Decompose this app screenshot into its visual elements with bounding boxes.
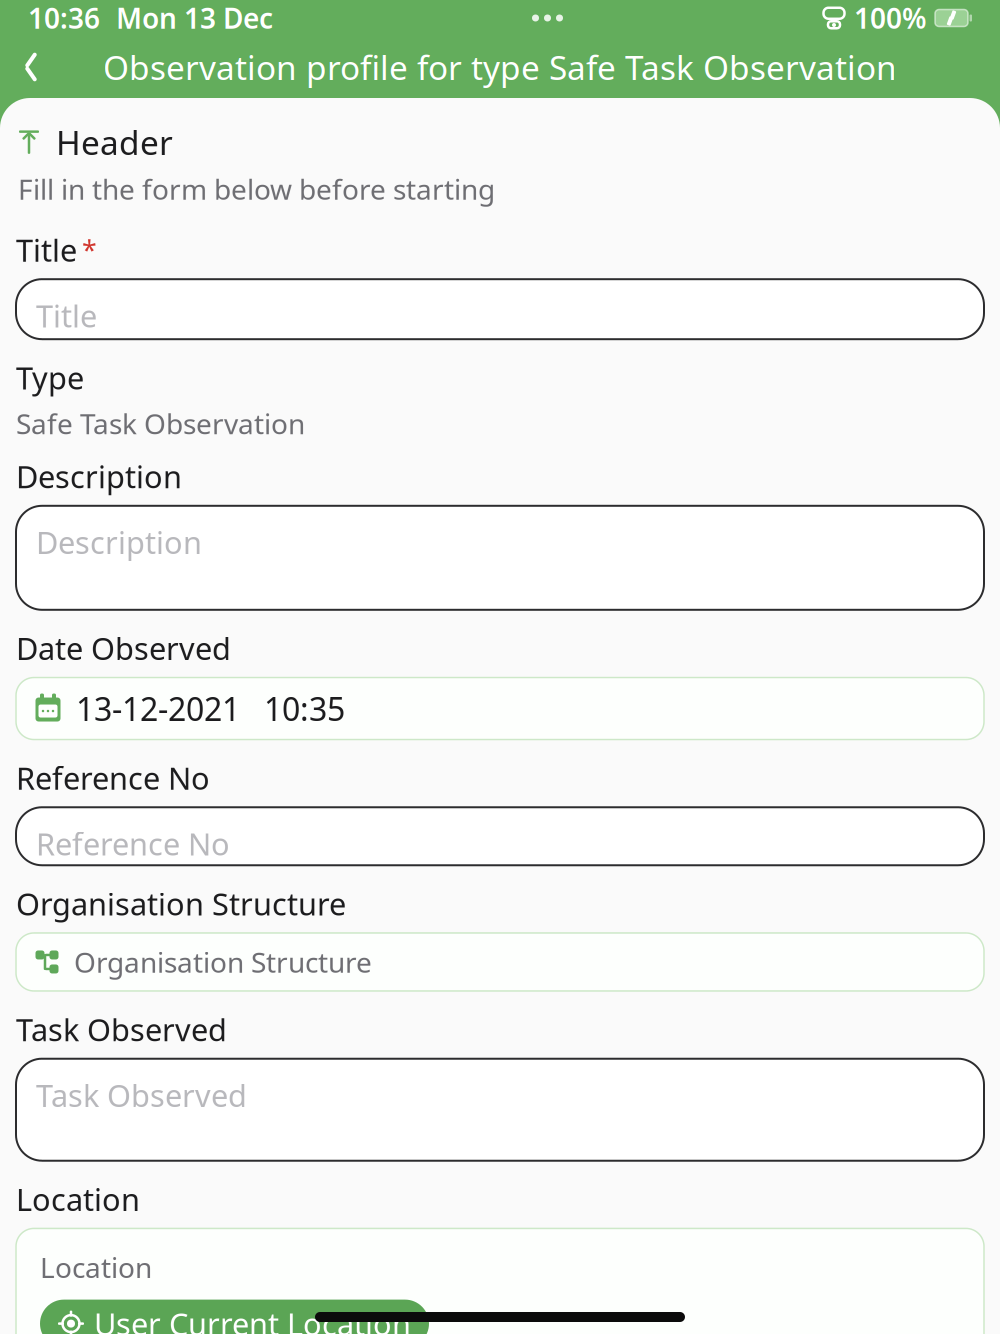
staticText: Organisation Structure — [74, 943, 372, 981]
staticText: Location — [16, 1179, 140, 1219]
staticText: Title — [36, 295, 97, 336]
staticText: User Current Location — [94, 1303, 411, 1334]
staticText: Mon 13 Dec — [116, 0, 273, 37]
staticText: Observation profile for type Safe Task O… — [103, 45, 897, 89]
staticText: Reference No — [36, 823, 230, 864]
staticText: Task Observed — [36, 1075, 247, 1115]
staticText: Task Observed — [16, 1009, 227, 1050]
staticText: Date Observed — [16, 628, 231, 668]
button[interactable]: User Current Location — [40, 1300, 429, 1334]
staticText: Description — [36, 522, 202, 562]
staticText: 13-12-2021 10:35 — [76, 687, 345, 730]
button[interactable]: Task Observed — [16, 1059, 984, 1161]
staticText: Safe Task Observation — [16, 405, 305, 442]
staticText: Type — [16, 357, 84, 398]
staticText: Location — [40, 1248, 152, 1286]
button[interactable]: Reference No — [16, 807, 984, 865]
staticText: 100% — [854, 0, 927, 37]
staticText: 10:36 — [28, 0, 100, 37]
staticText: Description — [16, 456, 182, 497]
staticText: Header — [56, 120, 173, 164]
button[interactable]: Organisation Structure — [16, 933, 984, 991]
staticText: Fill in the form below before starting — [18, 170, 495, 207]
button[interactable]: 13-12-2021 10:35 — [16, 677, 984, 739]
staticText: * — [82, 232, 97, 267]
staticText: Organisation Structure — [16, 883, 346, 924]
button[interactable]: Description — [16, 506, 984, 610]
button[interactable]: Back — [0, 36, 62, 98]
button[interactable]: Title — [16, 279, 984, 339]
staticText: Reference No — [16, 757, 210, 798]
staticText: Title — [16, 229, 77, 270]
